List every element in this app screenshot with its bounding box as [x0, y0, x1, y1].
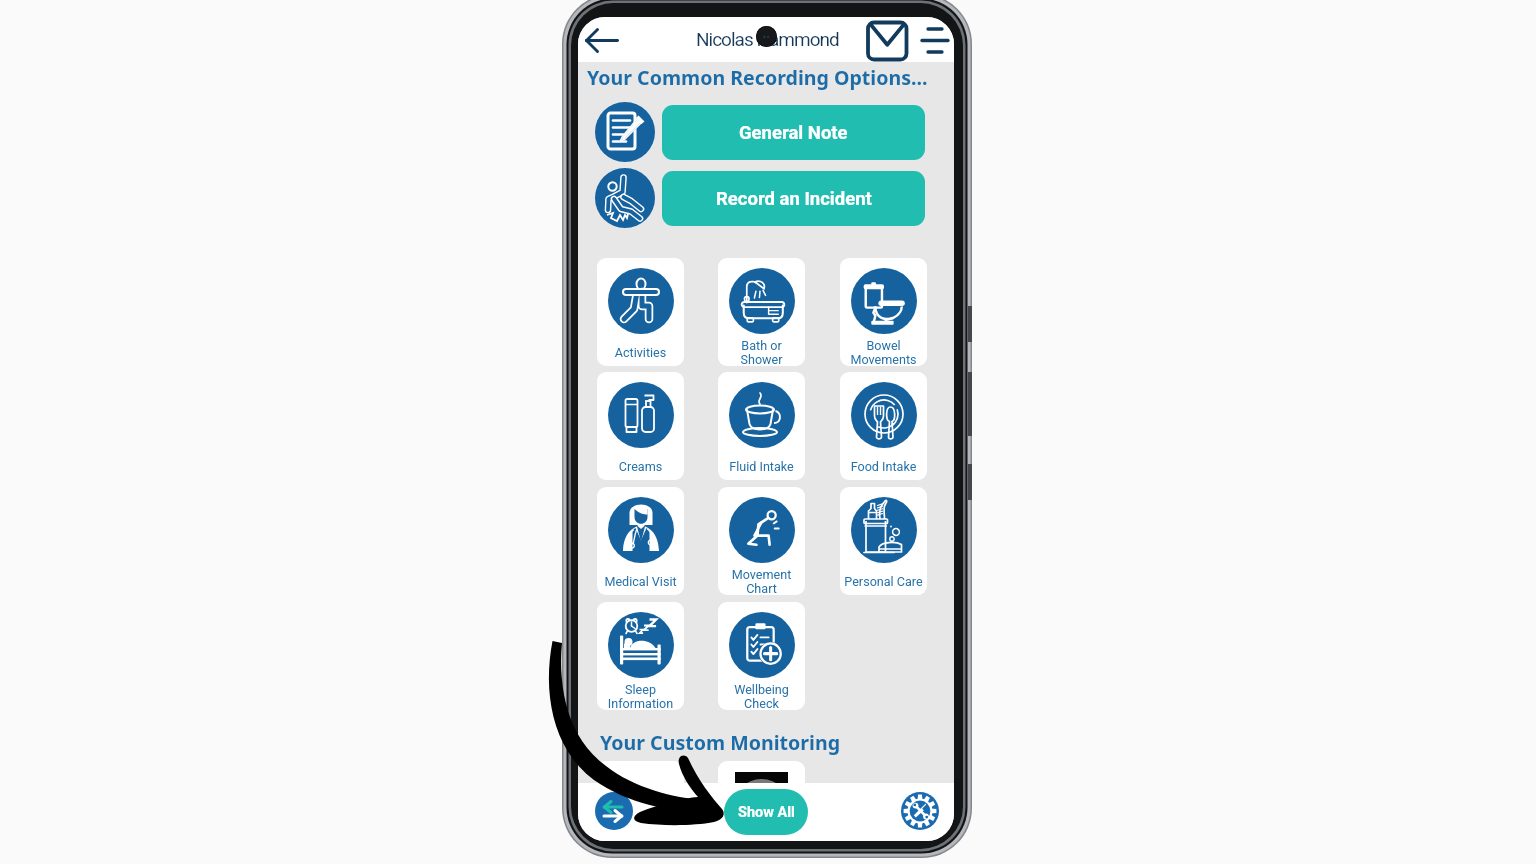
button[interactable]	[718, 761, 805, 841]
button[interactable]: Show All	[724, 789, 808, 835]
button[interactable]: Settings	[901, 792, 939, 830]
staticText: Activities	[597, 345, 684, 360]
button[interactable]: Switch user	[595, 792, 633, 830]
button[interactable]: General Note	[595, 102, 655, 162]
staticText: Personal Care	[840, 574, 927, 589]
button[interactable]: Fluid Intake	[718, 372, 805, 480]
button[interactable]: Personal Care	[840, 487, 927, 595]
staticText: Fluid Intake	[718, 459, 805, 474]
button[interactable]: Movement Chart	[718, 487, 805, 595]
button[interactable]: Activities	[597, 258, 684, 366]
button[interactable]: Messages	[864, 17, 910, 62]
staticText: Sleep Information	[597, 682, 684, 710]
button[interactable]: Menu	[920, 23, 952, 57]
button[interactable]: Bowel Movements	[840, 258, 927, 366]
staticText: Nicolas Hammond	[696, 28, 839, 50]
button[interactable]: Record an Incident	[595, 168, 655, 228]
staticText: Movement Chart	[718, 567, 805, 595]
button[interactable]: Wellbeing Check	[718, 602, 805, 710]
button[interactable]: Bath or Shower	[718, 258, 805, 366]
button[interactable]	[597, 761, 684, 841]
button[interactable]: Record an Incident	[662, 171, 925, 226]
staticText: Food Intake	[840, 459, 927, 474]
button[interactable]: Back	[585, 27, 619, 51]
staticText: Wellbeing Check	[718, 682, 805, 710]
staticText: Your Common Recording Options...	[587, 64, 928, 91]
button[interactable]: General Note	[662, 105, 925, 160]
staticText: Creams	[597, 459, 684, 474]
button[interactable]: Creams	[597, 372, 684, 480]
button[interactable]: Sleep Information	[597, 602, 684, 710]
button[interactable]: Food Intake	[840, 372, 927, 480]
staticText: Bath or Shower	[718, 338, 805, 366]
staticText: Record an Incident	[716, 188, 872, 210]
staticText: Bowel Movements	[840, 338, 927, 366]
staticText: Show All	[738, 804, 795, 821]
staticText: Your Custom Monitoring	[600, 729, 841, 756]
button[interactable]: Medical Visit	[597, 487, 684, 595]
staticText: General Note	[739, 122, 848, 144]
staticText: Medical Visit	[597, 574, 684, 589]
